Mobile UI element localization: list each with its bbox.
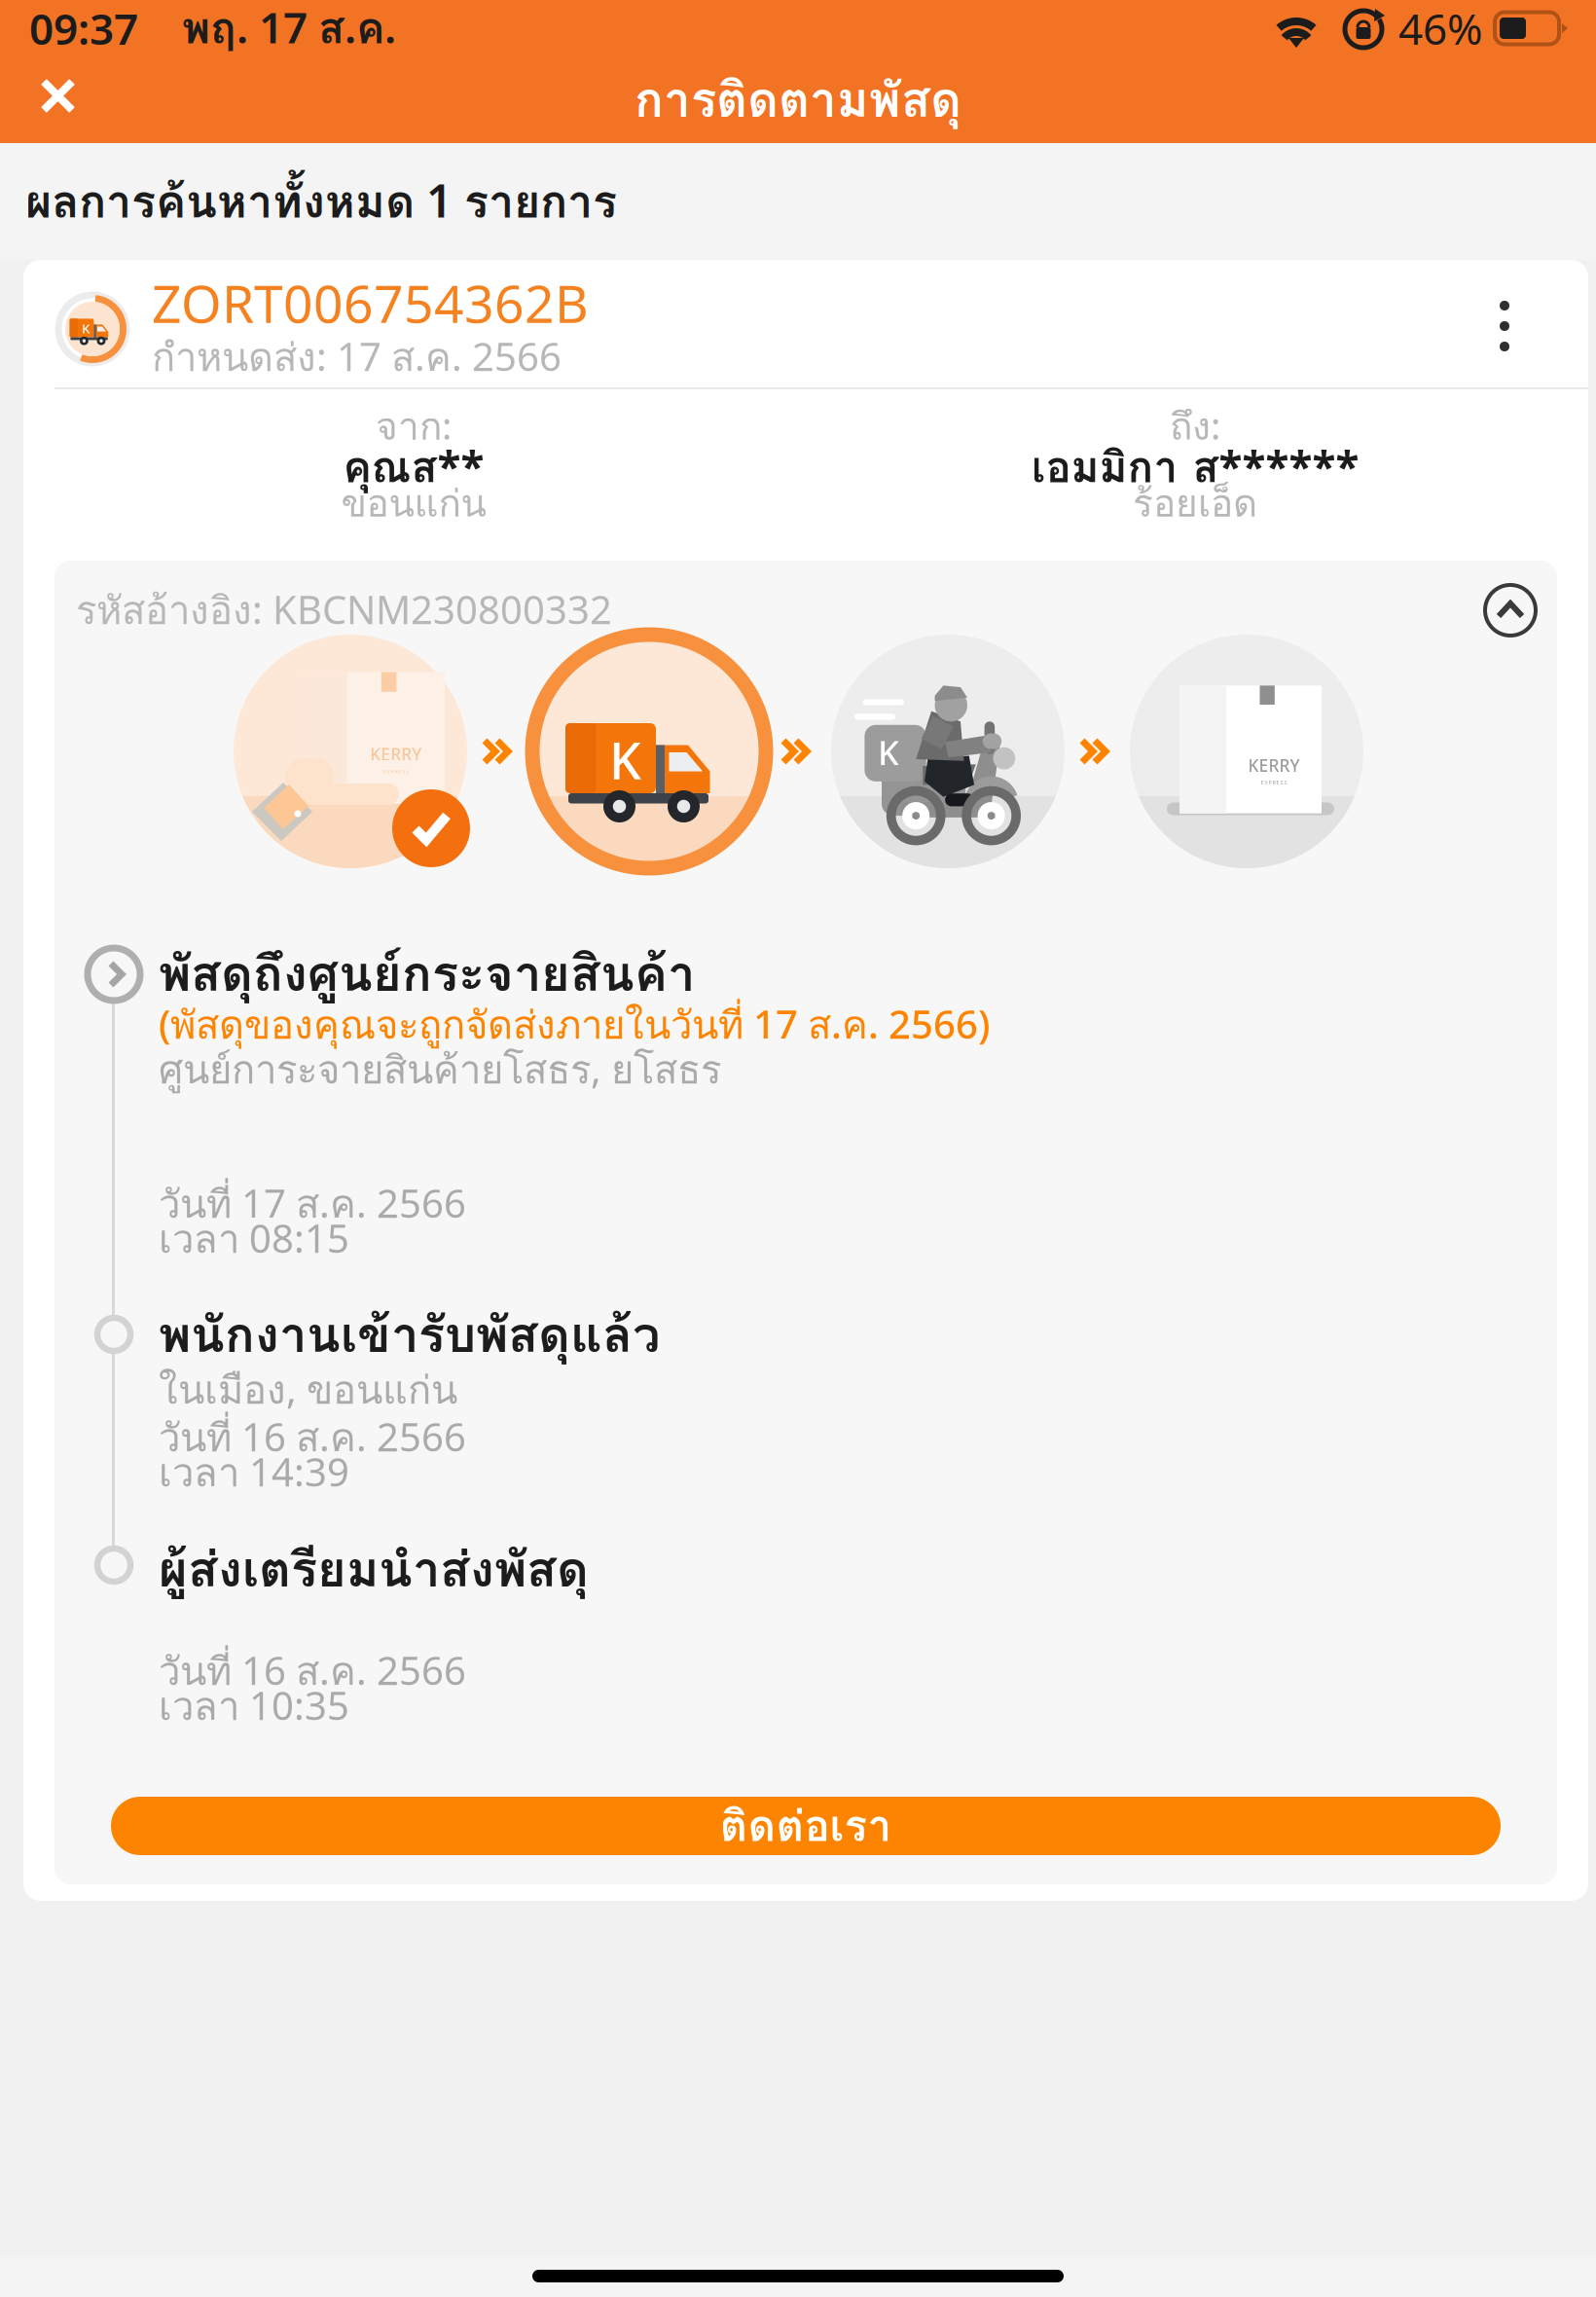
staticText: K — [609, 726, 641, 793]
staticText: KERRY — [370, 743, 422, 765]
staticText: จาก: — [376, 397, 452, 455]
staticText: รหัสอ้างอิง: KBCNM230800332 — [76, 580, 612, 640]
button[interactable]: More options — [1452, 273, 1557, 379]
staticText: K — [82, 320, 90, 337]
staticText: E X P R E S S — [1261, 779, 1287, 786]
button[interactable]: Collapse — [1479, 579, 1542, 641]
staticText: การติดตามพัสดุ — [635, 63, 961, 137]
staticText: เอมมิกา ส****** — [1031, 434, 1359, 500]
staticText: กำหนดส่ง: 17 ส.ค. 2566 — [152, 327, 562, 387]
staticText: ZORT006754362B — [152, 268, 589, 337]
staticText: ผลการค้นหาทั้งหมด 1 รายการ — [25, 166, 617, 237]
staticText: วันที่ 16 ส.ค. 2566 — [159, 1407, 466, 1468]
staticText: ร้อยเอ็ด — [1133, 474, 1257, 532]
staticText: KERRY — [1248, 754, 1300, 776]
button[interactable]: ติดต่อเรา — [111, 1797, 1501, 1855]
staticText: ติดต่อเรา — [720, 1793, 892, 1859]
staticText: พนักงานเข้ารับพัสดุแล้ว — [159, 1296, 660, 1373]
button[interactable]: ZORT006754362B — [152, 270, 755, 336]
staticText: ขอนแก่น — [341, 474, 486, 532]
staticText: K — [878, 730, 899, 775]
staticText: ถึง: — [1170, 397, 1220, 455]
staticText: พัสดุถึงศูนย์กระจายสินค้า — [159, 935, 695, 1011]
staticText: พฤ. 17 ส.ค. — [138, 0, 396, 61]
staticText: E X P R E S S — [383, 768, 409, 775]
staticText: (พัสดุของคุณจะถูกจัดส่งภายในวันที่ 17 ส.… — [159, 995, 990, 1055]
staticText: คุณส** — [343, 434, 484, 500]
staticText: ในเมือง, ขอนแก่น — [159, 1360, 457, 1420]
staticText: วันที่ 16 ส.ค. 2566 — [159, 1641, 466, 1701]
staticText: เวลา 08:15 — [159, 1209, 349, 1269]
staticText: เวลา 10:35 — [159, 1676, 349, 1736]
button[interactable]: Close — [0, 56, 103, 143]
staticText: เวลา 14:39 — [159, 1442, 349, 1503]
staticText: 09:37 — [29, 0, 138, 57]
staticText: ผู้ส่งเตรียมนำส่งพัสดุ — [159, 1531, 589, 1607]
staticText: 46% — [1398, 0, 1483, 57]
staticText: วันที่ 17 ส.ค. 2566 — [159, 1174, 466, 1234]
staticText: ศูนย์การะจายสินค้ายโสธร, ยโสธร — [159, 1039, 721, 1100]
